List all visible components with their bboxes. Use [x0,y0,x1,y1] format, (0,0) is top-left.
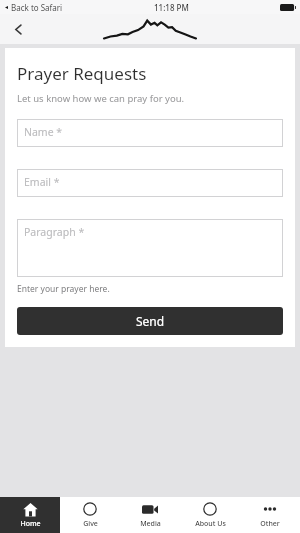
staticText: Prayer Requests [17,62,147,85]
button[interactable]: Name * [17,119,283,147]
button[interactable]: Home [0,497,60,533]
button[interactable]: Other [240,497,300,533]
button[interactable]: Give [60,497,120,533]
staticText: Media [140,519,161,529]
button[interactable]: Back [6,17,30,41]
staticText: 11:18 PM [154,2,189,13]
button[interactable]: Email * [17,169,283,197]
button[interactable]: Media [120,497,180,533]
staticText: Enter your prayer here. [17,283,110,295]
staticText: Other [260,519,280,529]
staticText: About Us [195,519,226,529]
staticText: Give [83,519,98,529]
staticText: Email * [24,175,60,189]
button[interactable]: About Us [180,497,240,533]
button[interactable]: Send [17,307,283,335]
button[interactable]: Paragraph * [17,219,283,277]
staticText: Send [136,313,165,329]
staticText: Back to Safari [11,2,63,13]
staticText: Let us know how we can pray for you. [17,92,185,105]
staticText: Home [20,519,41,529]
staticText: Paragraph * [24,225,85,239]
staticText: Name * [24,125,63,139]
